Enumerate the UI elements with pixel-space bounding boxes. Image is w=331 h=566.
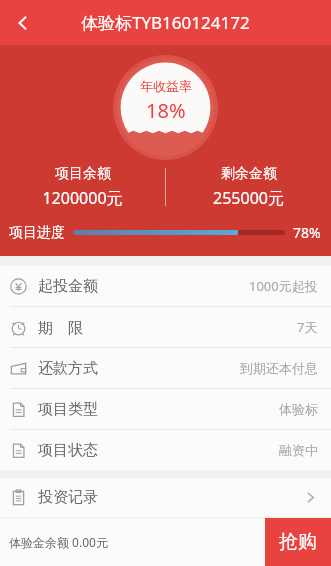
- button[interactable]: 起投金额: [0, 266, 331, 306]
- staticText: 项目状态: [38, 441, 98, 460]
- button[interactable]: 项目类型: [0, 389, 331, 429]
- staticText: 1200000元: [42, 187, 123, 209]
- staticText: 抢购: [279, 530, 317, 554]
- button[interactable]: 抢购: [265, 518, 331, 566]
- staticText: 起投金额: [38, 277, 98, 296]
- staticText: 78%: [293, 223, 321, 242]
- button[interactable]: 项目状态: [0, 430, 331, 470]
- button[interactable]: 投资记录: [0, 478, 331, 517]
- staticText: 项目余额: [55, 165, 111, 183]
- button[interactable]: 期 限: [0, 307, 331, 347]
- staticText: 体验金余额 0.00元: [9, 534, 108, 550]
- staticText: 剩余金额: [221, 165, 277, 183]
- staticText: 体验标: [279, 401, 318, 417]
- staticText: 255000元: [213, 187, 284, 209]
- button[interactable]: 还款方式: [0, 348, 331, 388]
- staticText: 还款方式: [38, 359, 98, 378]
- staticText: 融资中: [279, 442, 318, 458]
- button[interactable]: Back: [0, 0, 45, 45]
- staticText: 18%: [146, 97, 186, 124]
- staticText: 项目进度: [9, 224, 65, 242]
- staticText: 到期还本付息: [240, 360, 318, 376]
- staticText: 期 限: [38, 317, 83, 337]
- staticText: 项目类型: [38, 400, 98, 419]
- staticText: 年收益率: [140, 78, 192, 94]
- staticText: 体验标TYB160124172: [81, 11, 250, 34]
- staticText: 7天: [297, 318, 318, 336]
- staticText: 1000元起投: [249, 277, 318, 295]
- staticText: 投资记录: [38, 488, 98, 507]
